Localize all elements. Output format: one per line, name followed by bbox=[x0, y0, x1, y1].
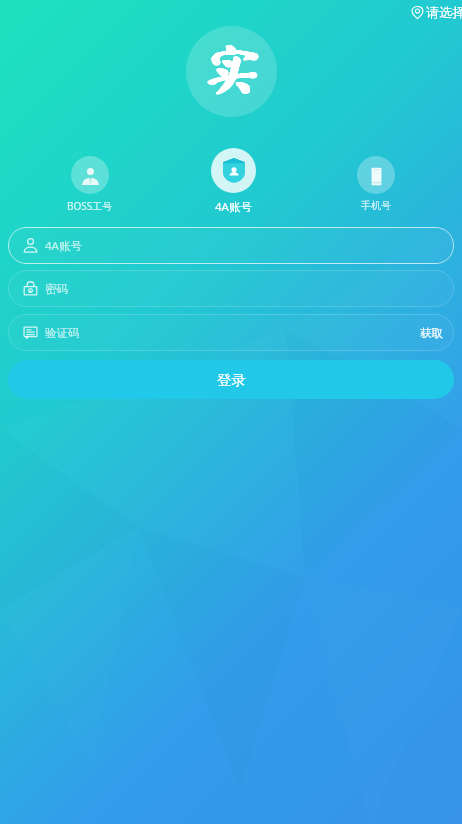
staticText: 4A账号 bbox=[45, 238, 82, 254]
staticText: 实 bbox=[203, 42, 266, 94]
button[interactable]: 验证码 bbox=[8, 314, 454, 351]
staticText: 实 bbox=[201, 42, 264, 95]
button[interactable]: Logo bbox=[186, 26, 277, 117]
staticText: 实 bbox=[201, 42, 264, 94]
staticText: BOSS工号 bbox=[67, 199, 113, 213]
button[interactable]: 密码 bbox=[8, 270, 454, 307]
button[interactable]: 手机号 bbox=[326, 156, 426, 212]
staticText: 实 bbox=[202, 42, 265, 94]
button[interactable]: 请选择城市 bbox=[411, 4, 462, 20]
staticText: 实 bbox=[203, 42, 266, 95]
staticText: 实 bbox=[202, 42, 265, 95]
button[interactable]: 4A账号 bbox=[183, 148, 283, 215]
staticText: 实 bbox=[201, 41, 264, 93]
staticText: 获取 bbox=[420, 326, 443, 340]
button[interactable]: BOSS工号 bbox=[40, 156, 140, 213]
staticText: 验证码 bbox=[45, 326, 80, 340]
staticText: 实 bbox=[203, 41, 266, 93]
staticText: 4A账号 bbox=[215, 199, 252, 215]
staticText: 手机号 bbox=[361, 199, 391, 212]
staticText: 密码 bbox=[45, 282, 68, 296]
staticText: 实 bbox=[202, 41, 265, 93]
button[interactable]: 登录 bbox=[8, 360, 454, 399]
staticText: 请选择 bbox=[426, 4, 462, 20]
button[interactable]: 4A账号 bbox=[8, 227, 454, 264]
staticText: 登录 bbox=[217, 371, 246, 389]
